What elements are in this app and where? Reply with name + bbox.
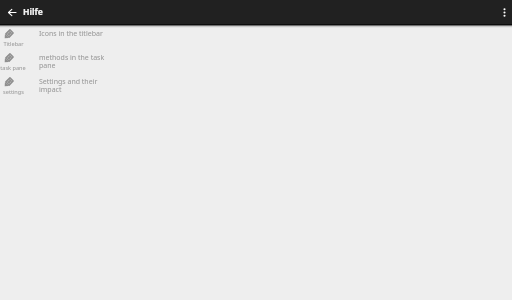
staticText: pane: [39, 61, 56, 71]
staticText: methods in the task: [39, 53, 105, 63]
staticText: settings: [3, 88, 24, 96]
button[interactable]: More options: [496, 0, 512, 24]
button[interactable]: task pane: [0, 52, 512, 76]
staticText: Icons in the titlebar: [39, 29, 103, 39]
staticText: Settings and their: [39, 77, 98, 87]
staticText: Titlebar: [3, 40, 24, 48]
button[interactable]: settings: [0, 76, 512, 100]
button[interactable]: Back: [0, 0, 23, 24]
button[interactable]: Titlebar: [0, 28, 512, 52]
staticText: Hilfe: [23, 6, 43, 18]
staticText: task pane: [0, 64, 26, 72]
staticText: impact: [39, 85, 62, 95]
